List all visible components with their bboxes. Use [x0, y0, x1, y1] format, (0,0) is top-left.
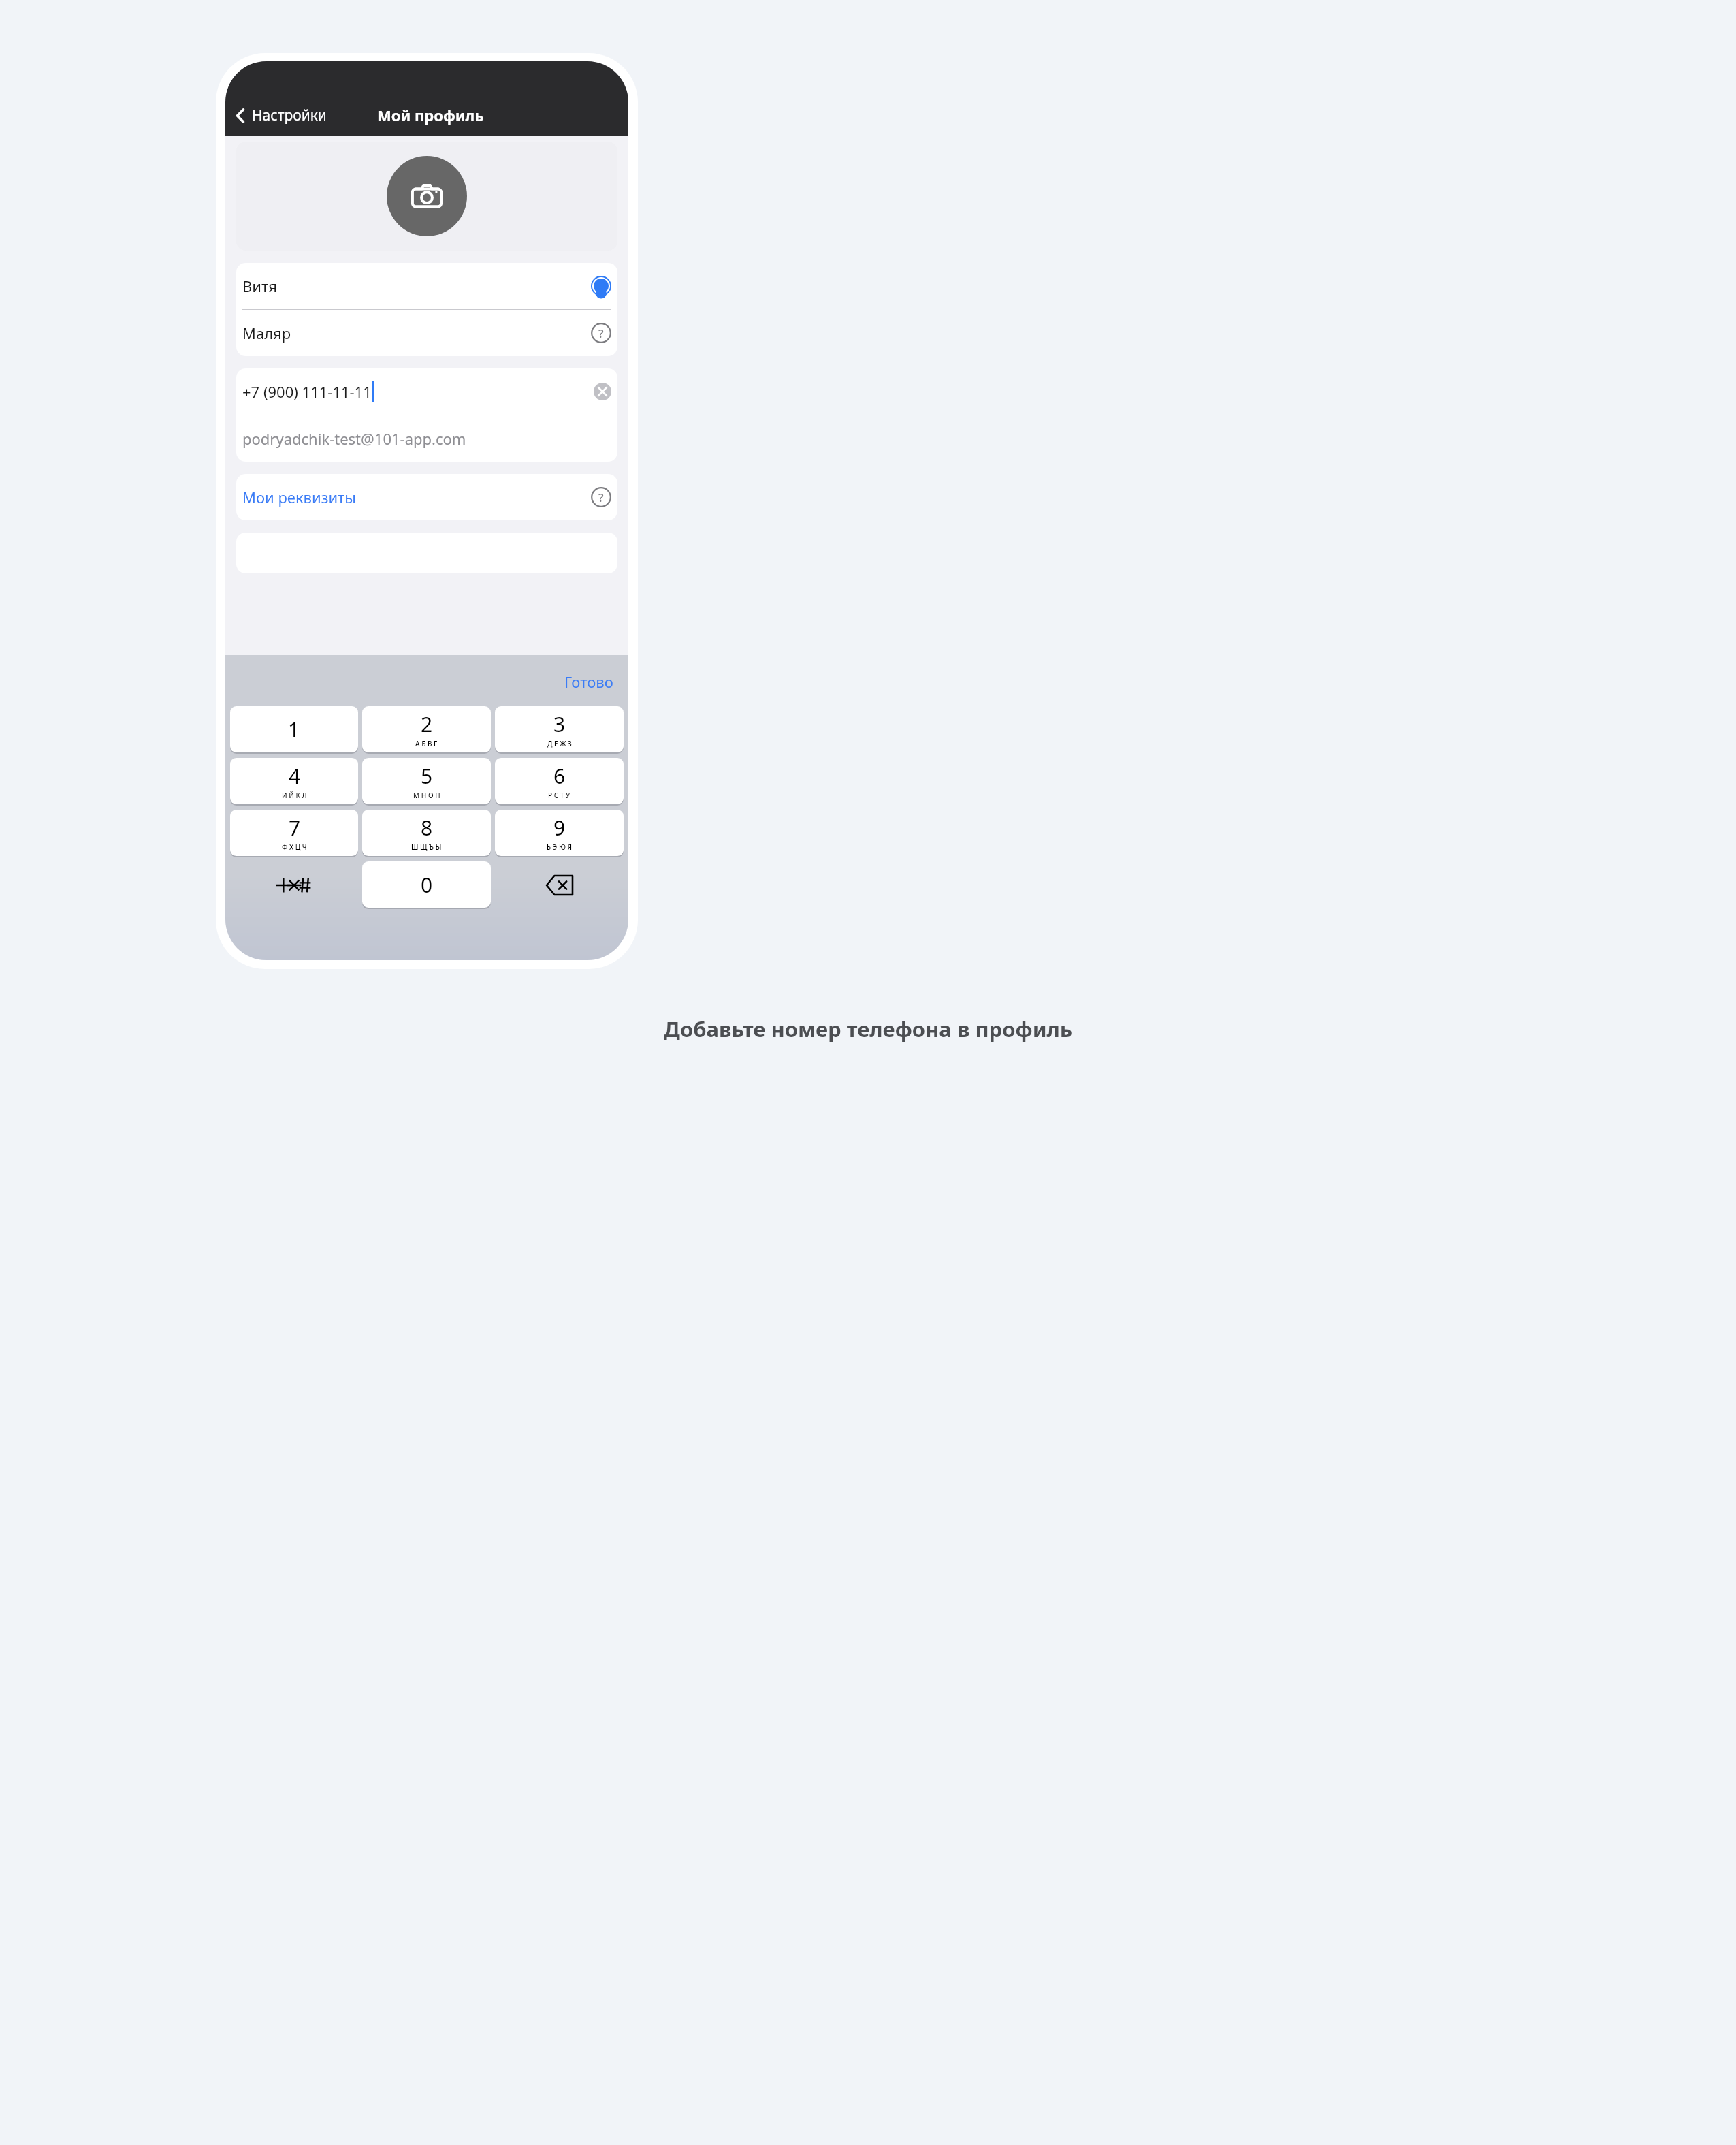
button[interactable]: Подсказка [591, 323, 611, 343]
button[interactable]: 4 [230, 758, 358, 806]
staticText: 9 [553, 814, 566, 842]
staticText: 1 [288, 716, 300, 744]
staticText: Д Е Ж З [547, 739, 572, 748]
button[interactable]: Готово [562, 670, 616, 693]
button[interactable]: Витя [236, 263, 617, 309]
staticText: Добавьте номер телефона в профиль [0, 1015, 1736, 1043]
button[interactable]: Очистить [594, 383, 611, 400]
button[interactable]: 8 [362, 810, 491, 857]
button[interactable]: 3 [495, 706, 624, 754]
button[interactable]: 0 [362, 861, 491, 909]
button[interactable]: Мои реквизиты [236, 474, 617, 520]
staticText: Ш Щ Ъ Ы [411, 842, 442, 852]
staticText: ? [598, 490, 604, 505]
staticText: М Н О П [413, 791, 440, 800]
staticText: Мой профиль [377, 105, 484, 125]
staticText: 4 [289, 762, 301, 790]
button[interactable]: 6 [495, 758, 624, 806]
button[interactable]: 2 [362, 706, 491, 754]
staticText: 3 [553, 710, 566, 738]
staticText: podryadchik-test@101-app.com [242, 428, 466, 449]
staticText: Мои реквизиты [242, 487, 356, 507]
button[interactable]: 9 [495, 810, 624, 857]
staticText: Настройки [252, 106, 327, 125]
staticText: Ь Э Ю Я [547, 842, 573, 852]
button[interactable]: Маляр [236, 310, 617, 356]
staticText: Витя [242, 276, 277, 296]
staticText: 6 [553, 762, 566, 790]
staticText: ? [598, 325, 604, 341]
staticText: 5 [421, 762, 433, 790]
staticText: +7 (900) 111-11-11 [242, 381, 372, 402]
button[interactable]: Настройки [231, 103, 331, 128]
staticText: Маляр [242, 323, 291, 343]
button[interactable]: 5 [362, 758, 491, 806]
button[interactable]: Подсказка [591, 487, 611, 507]
staticText: Р С Т У [548, 791, 570, 800]
button[interactable]: 7 [230, 810, 358, 857]
staticText: Ф Х Ц Ч [282, 842, 307, 852]
other: Профиль [591, 276, 611, 296]
button[interactable]: Мои реквизиты [236, 474, 617, 520]
staticText: И Й К Л [282, 791, 307, 800]
button[interactable]: Удалить [493, 859, 626, 911]
staticText: 0 [421, 871, 433, 899]
staticText: А Б В Г [415, 739, 438, 748]
staticText: 7 [289, 814, 301, 842]
button[interactable]: Добавить фото [387, 156, 467, 236]
button[interactable]: podryadchik-test@101-app.com [236, 415, 617, 462]
staticText: 8 [421, 814, 433, 842]
button[interactable]: Символы [228, 859, 360, 911]
button[interactable]: +7 (900) 111-11-11 [236, 368, 617, 415]
staticText: 2 [421, 710, 433, 738]
button[interactable]: 1 [230, 706, 358, 754]
